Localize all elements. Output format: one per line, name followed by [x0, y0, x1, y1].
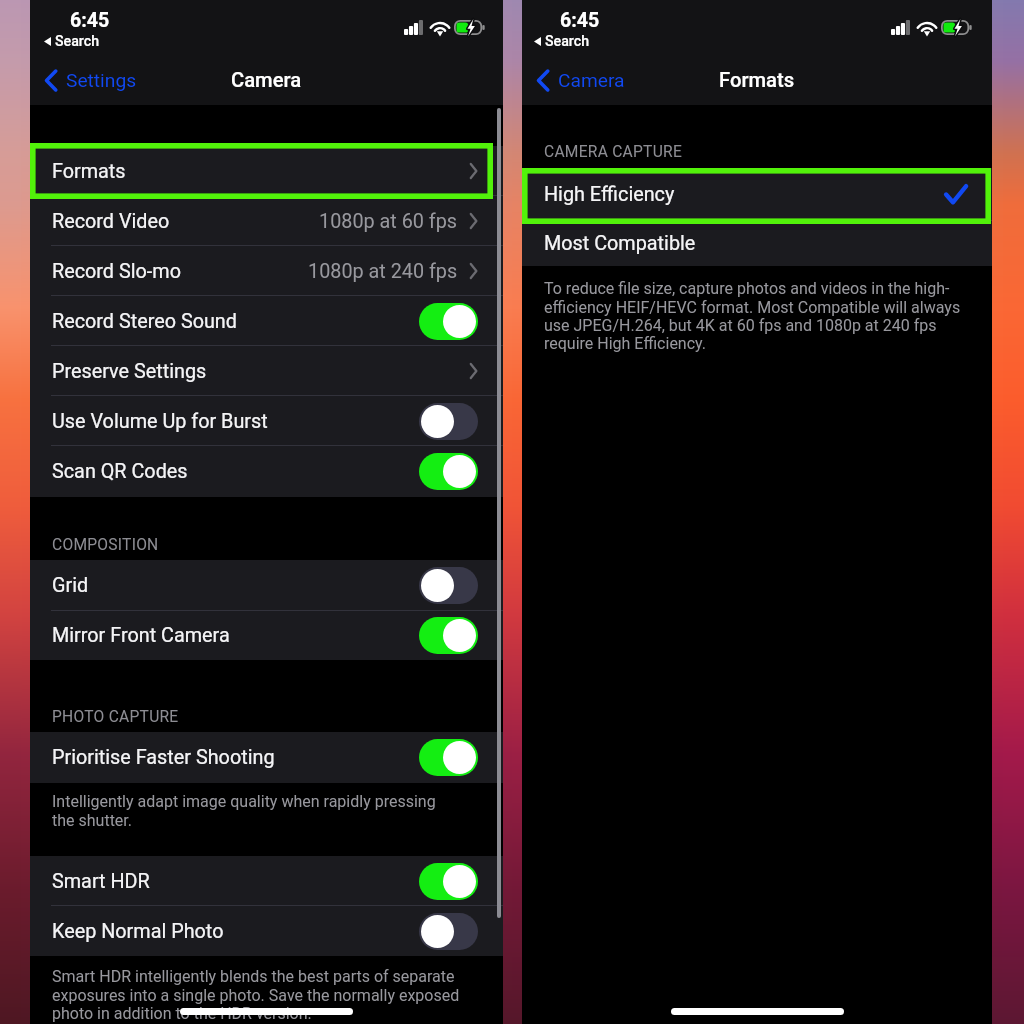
staticText: COMPOSITION [52, 536, 159, 554]
button[interactable]: Keep Normal Photo [30, 906, 503, 956]
staticText: Smart HDR intelligently blends the best … [52, 967, 460, 1022]
button[interactable]: Switch off [419, 567, 478, 604]
button[interactable]: Record Stereo Sound [30, 296, 503, 346]
button[interactable]: Switch on [419, 303, 478, 340]
button[interactable]: Prioritise Faster Shooting [30, 732, 503, 783]
staticText: To reduce file size, capture photos and … [544, 279, 961, 352]
staticText: CAMERA CAPTURE [544, 143, 682, 161]
staticText: Camera [231, 68, 302, 92]
staticText: Keep Normal Photo [52, 920, 224, 943]
button[interactable]: Use Volume Up for Burst [30, 396, 503, 446]
button[interactable]: Switch off [419, 403, 478, 440]
button[interactable]: Settings [44, 69, 137, 92]
staticText: PHOTO CAPTURE [52, 708, 179, 726]
button[interactable]: Switch off [419, 913, 478, 950]
button[interactable]: Switch on [419, 739, 478, 776]
button[interactable]: Grid [30, 560, 503, 611]
staticText: 6:45 [560, 9, 600, 32]
staticText: 1080p at 60 fps [319, 210, 458, 233]
staticText: Scan QR Codes [52, 460, 188, 483]
button[interactable]: Formats [30, 146, 503, 196]
staticText: Most Compatible [544, 232, 696, 255]
staticText: Formats [719, 68, 795, 92]
staticText: Smart HDR [52, 870, 150, 893]
button[interactable]: Formats highlighted [30, 143, 493, 199]
staticText: Preserve Settings [52, 360, 207, 383]
button[interactable]: High Efficiency highlighted [522, 168, 991, 224]
staticText: Record Slo-mo [52, 260, 181, 283]
button[interactable]: Search [534, 33, 590, 50]
staticText: High Efficiency [544, 183, 675, 206]
staticText: Prioritise Faster Shooting [52, 746, 275, 769]
staticText: Intelligently adapt image quality when r… [52, 792, 436, 829]
staticText: Camera [558, 69, 625, 92]
staticText: Record Video [52, 210, 170, 233]
button[interactable]: Switch on [419, 453, 478, 490]
button[interactable]: High Efficiency [522, 168, 992, 221]
staticText: Grid [52, 574, 89, 597]
button[interactable]: Preserve Settings [30, 346, 503, 396]
staticText: Formats [52, 160, 126, 183]
staticText: 1080p at 240 fps [308, 260, 458, 283]
button[interactable]: Smart HDR [30, 856, 503, 906]
staticText: 6:45 [70, 9, 110, 32]
staticText: Use Volume Up for Burst [52, 410, 268, 433]
button[interactable]: Record Slo-mo [30, 246, 503, 296]
staticText: Record Stereo Sound [52, 310, 237, 333]
button[interactable]: Scan QR Codes [30, 446, 503, 497]
button[interactable]: Search [44, 33, 100, 50]
staticText: Search [545, 33, 590, 50]
button[interactable]: Camera [536, 69, 625, 92]
button[interactable]: Record Video [30, 196, 503, 246]
button[interactable]: Switch on [419, 617, 478, 654]
staticText: Settings [66, 69, 137, 92]
button[interactable]: Mirror Front Camera [30, 611, 503, 660]
staticText: Mirror Front Camera [52, 624, 230, 647]
button[interactable]: Switch on [419, 863, 478, 900]
button[interactable]: Most Compatible [522, 221, 992, 266]
staticText: Search [55, 33, 100, 50]
